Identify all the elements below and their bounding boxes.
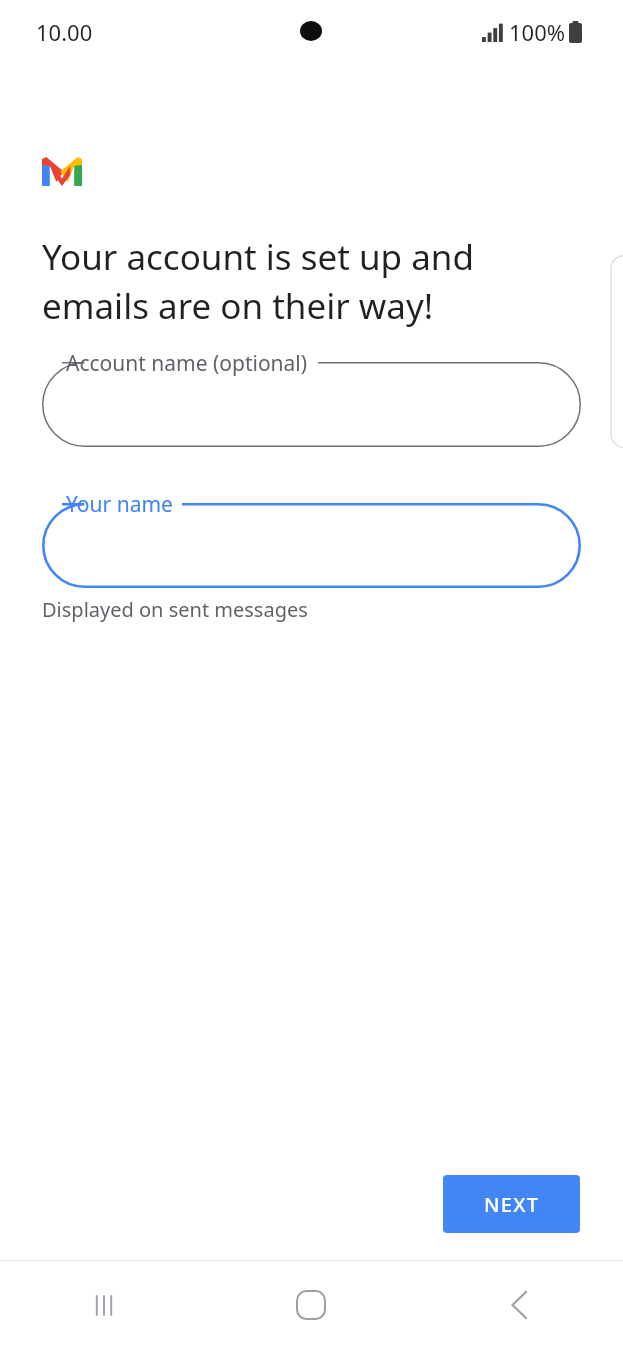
button[interactable]: Recent apps xyxy=(0,1261,207,1349)
button[interactable]: NEXT xyxy=(443,1175,580,1233)
button[interactable]: Your name xyxy=(42,503,581,588)
button[interactable]: Home xyxy=(207,1261,415,1349)
staticText: Account name (optional) xyxy=(66,349,308,378)
staticText: Your name xyxy=(66,490,173,519)
staticText: Displayed on sent messages xyxy=(42,596,308,623)
button[interactable]: Back xyxy=(415,1261,623,1349)
staticText: NEXT xyxy=(484,1191,540,1218)
staticText: Your account is set up and emails are on… xyxy=(42,233,579,330)
staticText: 10.00 xyxy=(36,17,93,47)
staticText: 100% xyxy=(509,17,566,47)
button[interactable]: Account name (optional) xyxy=(42,362,581,447)
